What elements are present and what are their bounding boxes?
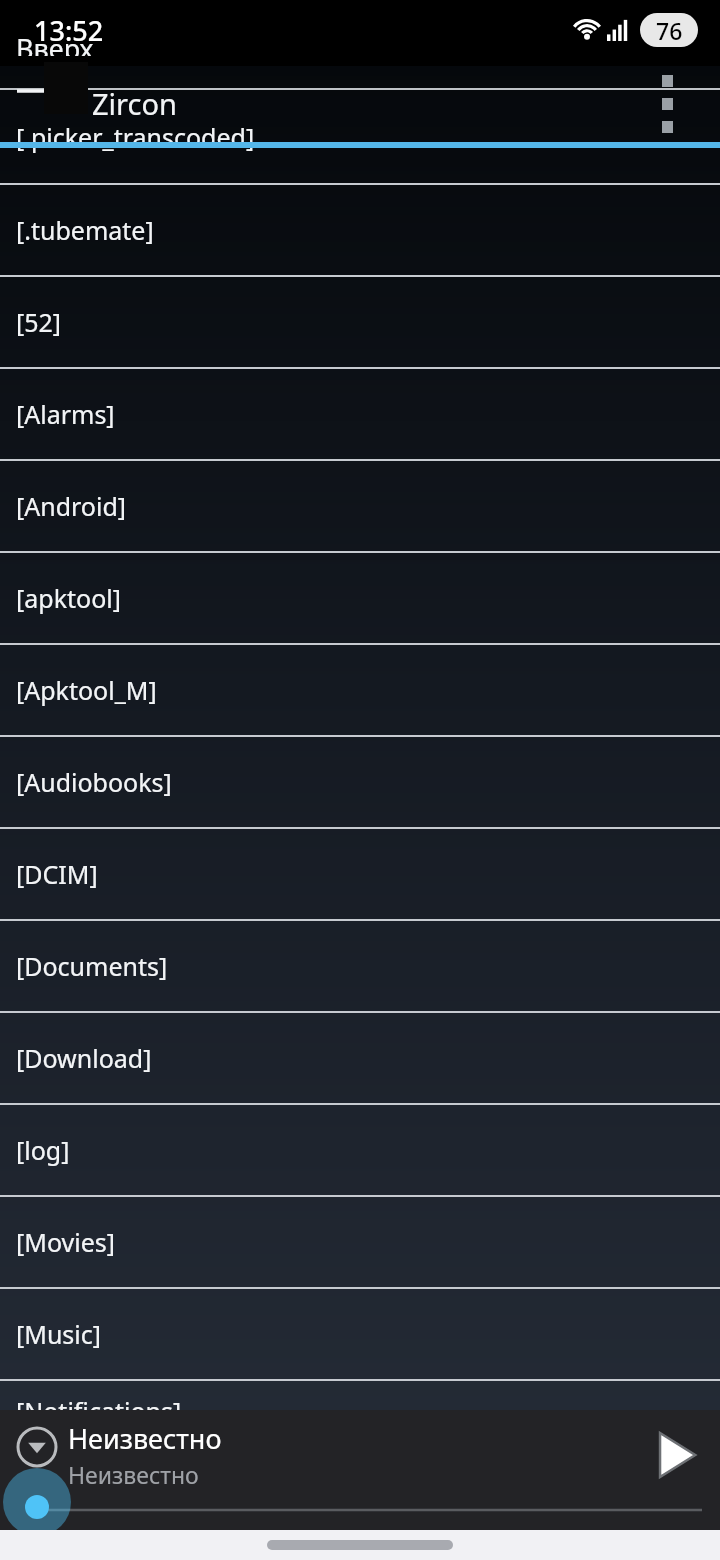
button[interactable]: [Alarms] — [0, 368, 720, 460]
staticText: [Documents] — [16, 949, 168, 983]
staticText: [Notifications] — [16, 1394, 182, 1410]
button[interactable]: Play — [644, 1424, 706, 1486]
button[interactable]: [.picker_transcoded] — [0, 0, 720, 184]
staticText: [.picker_transcoded] — [16, 120, 255, 154]
staticText: [Movies] — [16, 1225, 115, 1259]
staticText: Zircon — [92, 84, 177, 123]
button[interactable]: [Movies] — [0, 1196, 720, 1288]
staticText: [.tubemate] — [16, 213, 154, 247]
button[interactable]: [Audiobooks] — [0, 736, 720, 828]
staticText: [Android] — [16, 489, 127, 523]
button[interactable]: [Android] — [0, 460, 720, 552]
staticText: [DCIM] — [16, 857, 98, 891]
button[interactable]: [log] — [0, 1104, 720, 1196]
staticText: Неизвестно — [68, 1420, 222, 1457]
button[interactable]: [52] — [0, 276, 720, 368]
staticText: [Apktool_M] — [16, 673, 157, 707]
button[interactable]: [Apktool_M] — [0, 644, 720, 736]
staticText: [Alarms] — [16, 397, 115, 431]
staticText: [Audiobooks] — [16, 765, 172, 799]
button[interactable]: [Documents] — [0, 920, 720, 1012]
staticText: Неизвестно — [68, 1459, 199, 1490]
staticText: [log] — [16, 1133, 70, 1167]
button[interactable]: Back — [4, 68, 62, 114]
button[interactable]: [Music] — [0, 1288, 720, 1380]
button[interactable]: [DCIM] — [0, 828, 720, 920]
staticText: 13:52 — [34, 12, 104, 49]
button[interactable]: [apktool] — [0, 552, 720, 644]
staticText: [Download] — [16, 1041, 152, 1075]
staticText: Вверх — [16, 38, 94, 56]
staticText: [Music] — [16, 1317, 102, 1351]
button[interactable]: Collapse player — [0, 1410, 720, 1530]
staticText: [apktool] — [16, 581, 121, 615]
button[interactable]: [Download] — [0, 1012, 720, 1104]
staticText: [52] — [16, 305, 62, 339]
button[interactable]: [Notifications] — [0, 1380, 720, 1410]
staticText: 76 — [656, 15, 683, 46]
button[interactable]: [.tubemate] — [0, 184, 720, 276]
button[interactable]: Collapse player — [14, 1424, 60, 1470]
button[interactable]: More options — [640, 60, 694, 148]
